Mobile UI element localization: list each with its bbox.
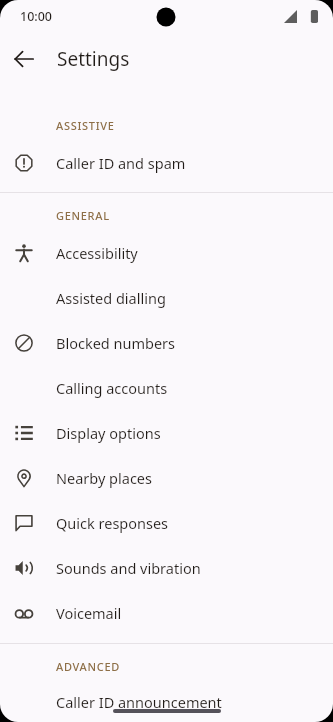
staticText: Caller ID and spam: [56, 153, 186, 173]
staticText: Accessibility: [56, 243, 138, 263]
staticText: Assisted dialling: [56, 288, 166, 308]
button[interactable]: Display options: [0, 410, 333, 455]
staticText: Voicemail: [56, 603, 122, 623]
button[interactable]: Sounds and vibration: [0, 545, 333, 590]
button[interactable]: Quick responses: [0, 500, 333, 545]
staticText: ADVANCED: [56, 659, 120, 674]
button[interactable]: Nearby places: [0, 455, 333, 500]
button[interactable]: Caller ID and spam: [0, 140, 333, 185]
staticText: Display options: [56, 423, 161, 443]
staticText: Calling accounts: [56, 378, 168, 398]
staticText: 10:00: [20, 8, 53, 25]
staticText: GENERAL: [56, 208, 110, 223]
staticText: ASSISTIVE: [56, 118, 115, 133]
staticText: Sounds and vibration: [56, 558, 201, 578]
staticText: Settings: [57, 46, 130, 72]
staticText: Nearby places: [56, 468, 152, 488]
button[interactable]: Caller ID announcement: [0, 681, 333, 722]
button[interactable]: Assisted dialling: [0, 275, 333, 320]
button[interactable]: Accessibility: [0, 230, 333, 275]
button[interactable]: Voicemail: [0, 590, 333, 635]
staticText: Blocked numbers: [56, 333, 176, 353]
staticText: Caller ID announcement: [56, 692, 222, 712]
button[interactable]: Calling accounts: [0, 365, 333, 410]
button[interactable]: Blocked numbers: [0, 320, 333, 365]
button[interactable]: Back: [4, 39, 44, 79]
staticText: Quick responses: [56, 513, 169, 533]
